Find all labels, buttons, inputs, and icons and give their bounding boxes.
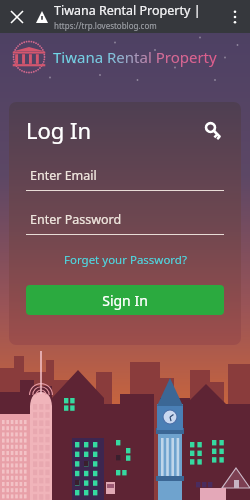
other: Key bbox=[202, 119, 224, 141]
button[interactable]: Forget your Password? bbox=[64, 252, 187, 268]
button[interactable]: More options bbox=[224, 6, 246, 28]
other: Not secure bbox=[32, 7, 52, 27]
staticText: Tiwana Rental Property bbox=[53, 47, 217, 67]
button[interactable]: Enter Email bbox=[26, 167, 224, 191]
staticText: Enter Email bbox=[30, 167, 97, 184]
staticText: Tiwana Rental Property | Log In bbox=[54, 2, 224, 19]
staticText: Log In bbox=[26, 115, 92, 145]
staticText: Sign In bbox=[102, 291, 148, 310]
button[interactable]: Enter Password bbox=[26, 211, 224, 235]
other: Logo bbox=[12, 40, 46, 74]
staticText: Enter Password bbox=[30, 211, 122, 228]
button[interactable]: Sign In bbox=[26, 285, 224, 315]
button[interactable]: Close bbox=[4, 4, 30, 30]
staticText: https://trp.lovestoblog.com bbox=[54, 20, 157, 31]
